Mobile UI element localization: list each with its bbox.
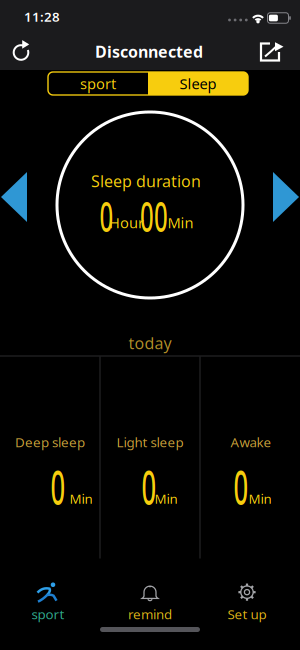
button[interactable]: Sleep [148, 72, 248, 95]
staticText: today [128, 332, 171, 354]
staticText: Deep sleep [15, 433, 85, 451]
staticText: Awake [230, 433, 271, 451]
staticText: remind [128, 605, 172, 623]
staticText: 0 [44, 456, 71, 518]
staticText: Min [154, 490, 177, 507]
button[interactable] [259, 39, 287, 63]
staticText: 0 [227, 456, 254, 518]
button[interactable]: Set up [227, 581, 266, 623]
staticText: 11:28 [24, 8, 60, 25]
staticText: 00 [130, 189, 178, 243]
staticText: Sleep [179, 74, 216, 93]
button[interactable] [1, 172, 27, 222]
staticText: Min [69, 490, 92, 507]
staticText: Disconnected [95, 41, 203, 62]
staticText: Sleep duration [91, 170, 201, 192]
staticText: Min [167, 213, 193, 232]
button[interactable]: sport [31, 581, 64, 623]
staticText: sport [80, 74, 116, 93]
staticText: sport [31, 605, 64, 623]
staticText: Min [248, 490, 271, 507]
button[interactable]: sport [48, 72, 148, 95]
button[interactable] [7, 37, 35, 65]
staticText: Hour [109, 213, 144, 232]
staticText: 0 [135, 456, 162, 518]
staticText: Light sleep [116, 433, 183, 451]
button[interactable] [273, 172, 299, 222]
button[interactable]: remind [128, 581, 172, 623]
staticText: 0 [94, 189, 118, 243]
staticText: Set up [227, 605, 266, 623]
